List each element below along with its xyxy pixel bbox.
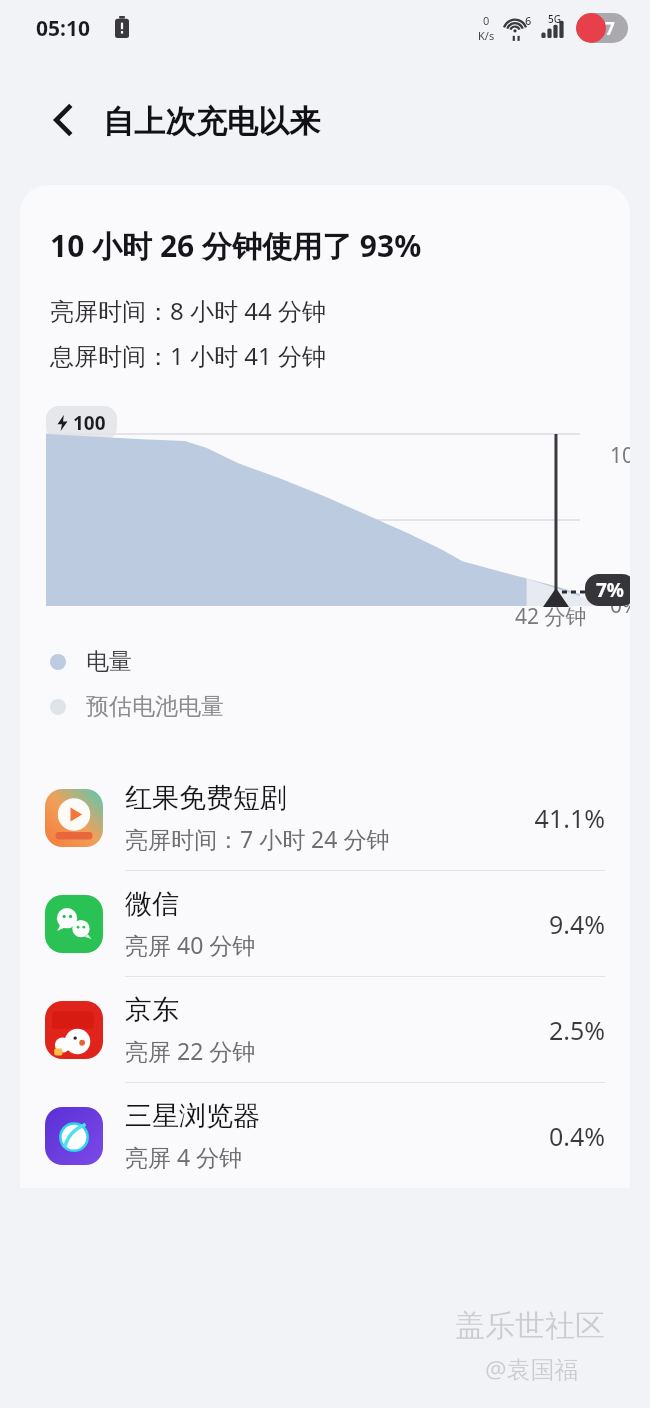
button[interactable]: 电量: [50, 647, 630, 676]
staticText: 42 分钟: [515, 602, 587, 631]
staticText: 7%: [596, 577, 625, 603]
staticText: 0.4%: [548, 1119, 605, 1153]
staticText: 盖乐世社区: [455, 1307, 605, 1345]
staticText: 2.5%: [548, 1013, 605, 1047]
staticText: 7: [605, 17, 615, 40]
button[interactable]: 京东: [20, 977, 630, 1082]
staticText: 100: [73, 410, 106, 436]
staticText: 红果免费短剧: [125, 781, 287, 815]
staticText: 100: [610, 441, 630, 470]
staticText: K/s: [478, 28, 495, 43]
button[interactable]: 预估电池电量: [50, 692, 630, 721]
staticText: 微信: [125, 887, 179, 921]
staticText: 电量: [86, 647, 132, 676]
staticText: 41.1%: [534, 801, 605, 835]
staticText: 亮屏时间：7 小时 24 分钟: [125, 823, 390, 854]
staticText: 9.4%: [548, 907, 605, 941]
staticText: 自上次充电以来: [103, 102, 320, 141]
button[interactable]: 红果免费短剧: [20, 765, 630, 870]
button[interactable]: Back: [32, 92, 88, 148]
staticText: 三星浏览器: [125, 1099, 260, 1133]
staticText: 预估电池电量: [86, 692, 224, 721]
staticText: 亮屏 40 分钟: [125, 929, 256, 960]
staticText: 05:10: [36, 14, 90, 43]
staticText: 10 小时 26 分钟使用了 93%: [50, 225, 422, 266]
staticText: 0%: [610, 591, 630, 620]
staticText: 亮屏时间：8 小时 44 分钟: [50, 294, 326, 327]
button[interactable]: 三星浏览器: [20, 1083, 630, 1188]
staticText: 亮屏 22 分钟: [125, 1035, 256, 1066]
staticText: 5G: [548, 12, 561, 26]
staticText: 京东: [125, 993, 179, 1027]
button[interactable]: 微信: [20, 871, 630, 976]
staticText: @袁国福: [485, 1352, 579, 1385]
staticText: 6: [525, 13, 532, 28]
staticText: 息屏时间：1 小时 41 分钟: [50, 339, 326, 372]
staticText: 亮屏 4 分钟: [125, 1141, 243, 1172]
staticText: 0: [483, 13, 490, 28]
